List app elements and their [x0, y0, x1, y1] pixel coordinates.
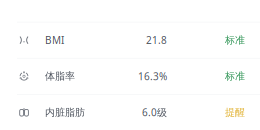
button[interactable]: 内脏脂肪: [0, 95, 260, 130]
staticText: 标准: [225, 70, 245, 83]
staticText: BMI: [45, 33, 64, 47]
staticText: 16.3%: [138, 69, 167, 83]
staticText: 6.0级: [142, 105, 167, 119]
staticText: 体脂率: [45, 70, 75, 83]
button[interactable]: 体脂率: [0, 58, 260, 94]
staticText: 内脏脂肪: [45, 106, 85, 119]
staticText: 提醒: [225, 106, 245, 119]
staticText: 标准: [225, 34, 245, 46]
button[interactable]: BMI: [0, 22, 260, 58]
staticText: 21.8: [146, 33, 167, 47]
